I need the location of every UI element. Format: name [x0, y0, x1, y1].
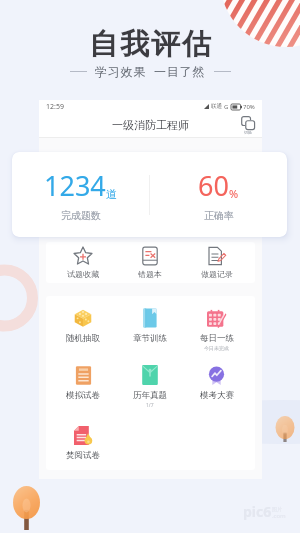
- staticText: 做题记录: [201, 269, 233, 279]
- button[interactable]: 错题本: [116, 242, 183, 283]
- staticText: 道: [106, 187, 117, 201]
- staticText: 70%: [243, 103, 255, 111]
- staticText: G: [224, 103, 229, 111]
- staticText: 1234: [44, 167, 106, 204]
- button[interactable]: 试题收藏: [50, 242, 116, 283]
- staticText: 正确率: [204, 209, 234, 222]
- button[interactable]: 模拟试卷: [50, 365, 116, 401]
- staticText: 自我评估: [88, 26, 212, 63]
- staticText: 联通: [211, 103, 222, 110]
- staticText: %: [229, 186, 239, 201]
- staticText: 切换: [244, 130, 252, 135]
- button[interactable]: 切换: [241, 116, 255, 135]
- staticText: 1/7: [146, 402, 154, 409]
- button[interactable]: 焚阅试卷: [50, 425, 116, 461]
- staticText: 错题本: [138, 269, 162, 279]
- staticText: 60: [198, 167, 229, 204]
- staticText: 模拟试卷: [66, 390, 100, 401]
- staticText: .com: [272, 512, 286, 520]
- button[interactable]: 章节训练: [116, 308, 183, 344]
- staticText: 焚阅试卷: [66, 450, 100, 461]
- staticText: 每日一练: [200, 333, 234, 344]
- staticText: 试题收藏: [67, 269, 99, 279]
- staticText: 今日未完成: [204, 345, 229, 351]
- staticText: 随机抽取: [66, 333, 100, 344]
- button[interactable]: 随机抽取: [50, 308, 116, 344]
- staticText: 学习效果 一目了然: [95, 63, 206, 79]
- staticText: 图片: [272, 506, 282, 512]
- button[interactable]: 做题记录: [183, 242, 250, 283]
- button[interactable]: 每日一练: [183, 308, 250, 351]
- staticText: pic6: [243, 502, 272, 521]
- staticText: 模考大赛: [200, 390, 234, 401]
- button[interactable]: 模考大赛: [183, 365, 250, 401]
- staticText: 历年真题: [133, 390, 167, 401]
- button[interactable]: 历年真题: [116, 365, 183, 409]
- staticText: 章节训练: [133, 333, 167, 344]
- staticText: 完成题数: [61, 209, 101, 222]
- staticText: 一级消防工程师: [112, 118, 189, 132]
- staticText: 12:59: [46, 102, 64, 112]
